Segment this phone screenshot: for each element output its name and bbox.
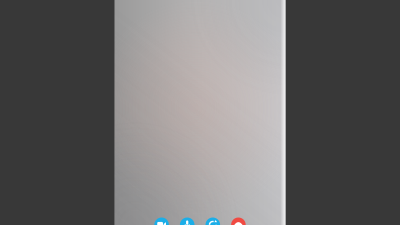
- button[interactable]: Mute microphone: [180, 217, 194, 225]
- button[interactable]: End call: [231, 217, 246, 225]
- button[interactable]: Flip camera: [205, 217, 220, 225]
- button[interactable]: Turn camera off: [154, 217, 169, 225]
